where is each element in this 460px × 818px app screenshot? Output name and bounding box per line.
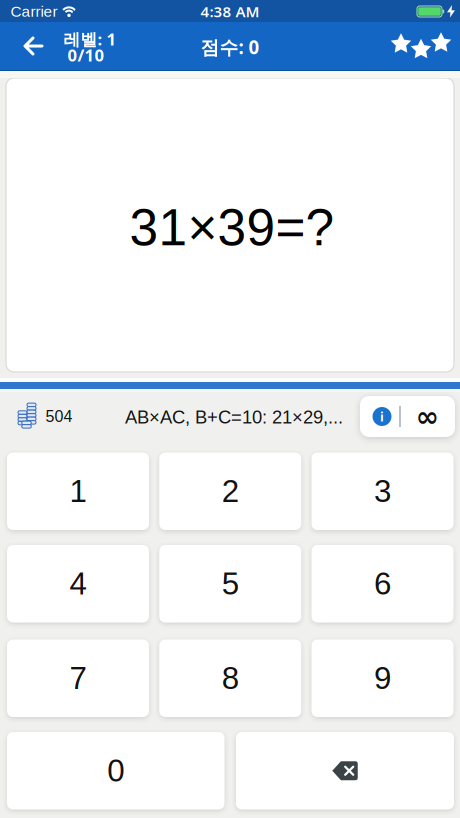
staticText: 0/10 — [67, 44, 104, 66]
button[interactable]: 2 — [159, 452, 301, 530]
button[interactable]: ∞ — [402, 396, 452, 437]
button[interactable]: 5 — [159, 545, 301, 622]
staticText: 4 — [69, 566, 86, 601]
button[interactable]: i — [362, 396, 402, 437]
button[interactable]: 9 — [311, 639, 453, 717]
staticText: 레벨: 1 — [63, 28, 116, 50]
staticText: 2 — [222, 474, 239, 509]
button[interactable]: 8 — [159, 639, 301, 717]
staticText: AB×AC, B+C=10: 21×29,... — [125, 407, 343, 427]
button[interactable]: 3 — [311, 452, 453, 530]
button[interactable]: 7 — [7, 639, 149, 717]
staticText: 1 — [69, 474, 86, 509]
staticText: 6 — [374, 566, 391, 601]
staticText: 0 — [107, 753, 124, 788]
staticText: i — [380, 408, 384, 425]
button[interactable] — [236, 732, 454, 809]
button[interactable]: 4 — [7, 545, 149, 622]
button[interactable]: 0 — [7, 732, 224, 809]
staticText: 3 — [374, 474, 391, 509]
staticText: 8 — [222, 661, 239, 696]
staticText: 9 — [374, 661, 391, 696]
staticText: 7 — [69, 661, 86, 696]
staticText: Carrier — [10, 3, 57, 20]
staticText: 504 — [45, 408, 72, 425]
button[interactable]: 레벨: 1 — [45, 30, 135, 63]
button[interactable] — [391, 28, 451, 66]
staticText: 점수: 0 — [200, 34, 259, 60]
staticText: 31×39=? — [129, 199, 334, 256]
staticText: ∞ — [415, 401, 438, 432]
button[interactable]: 6 — [311, 545, 453, 622]
staticText: 5 — [222, 566, 239, 601]
button[interactable]: 1 — [7, 452, 149, 530]
button[interactable] — [15, 27, 52, 64]
staticText: 4:38 AM — [200, 1, 259, 22]
